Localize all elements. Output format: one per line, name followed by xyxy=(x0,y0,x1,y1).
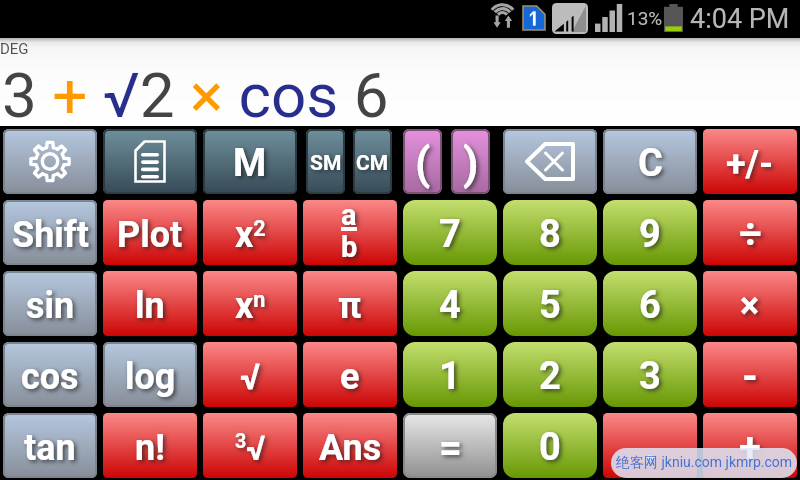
staticText: a xyxy=(341,200,357,232)
button[interactable]: +/- xyxy=(703,129,797,194)
staticText: Plot xyxy=(117,214,183,256)
staticText: ( xyxy=(415,138,431,190)
staticText: 2 xyxy=(539,354,561,399)
button[interactable]: 8 xyxy=(503,200,597,265)
button[interactable]: × xyxy=(703,271,797,336)
staticText: π xyxy=(338,285,362,327)
button[interactable]: M xyxy=(203,129,297,194)
button[interactable]: 6 xyxy=(603,271,697,336)
button[interactable]: - xyxy=(703,342,797,407)
button[interactable]: log xyxy=(103,342,197,407)
staticText: xn xyxy=(235,285,266,327)
staticText: ÷ xyxy=(739,211,762,258)
staticText: +/- xyxy=(726,143,774,185)
button[interactable]: ÷ xyxy=(703,200,797,265)
staticText: ) xyxy=(463,138,479,190)
button[interactable]: Shift xyxy=(3,200,97,265)
staticText: x2 xyxy=(235,214,266,256)
staticText: e xyxy=(340,356,360,398)
staticText: 13% xyxy=(627,7,663,29)
button[interactable]: ( xyxy=(403,129,442,194)
button[interactable]: 9 xyxy=(603,200,697,265)
staticText: n! xyxy=(135,427,165,469)
button[interactable]: √ xyxy=(203,342,297,407)
staticText: 7 xyxy=(439,212,461,257)
staticText: log xyxy=(125,356,176,398)
button[interactable]: Plot xyxy=(103,200,197,265)
button[interactable]: x2 xyxy=(203,200,297,265)
staticText: 4:04 PM xyxy=(690,3,790,35)
button[interactable]: 3√ xyxy=(203,413,297,478)
staticText: 3 + √2 × cos 6 xyxy=(2,59,389,132)
staticText: 8 xyxy=(539,212,561,257)
staticText: Shift xyxy=(12,214,89,256)
staticText: × xyxy=(740,285,760,327)
staticText: b xyxy=(341,230,358,264)
button[interactable]: + xyxy=(703,413,797,478)
button[interactable]: cos xyxy=(3,342,97,407)
button[interactable]: ) xyxy=(451,129,490,194)
staticText: cos xyxy=(21,356,79,398)
button[interactable]: 3 xyxy=(603,342,697,407)
staticText: 9 xyxy=(639,212,661,257)
button[interactable]: Backspace xyxy=(503,129,597,194)
button[interactable]: e xyxy=(303,342,397,407)
button[interactable]: 4 xyxy=(403,271,497,336)
staticText: CM xyxy=(356,151,389,176)
button[interactable]: SM xyxy=(306,129,345,194)
button[interactable]: CM xyxy=(353,129,392,194)
staticText: . xyxy=(644,424,656,471)
button[interactable]: . xyxy=(603,413,697,478)
staticText: = xyxy=(439,424,462,471)
button[interactable]: 5 xyxy=(503,271,597,336)
staticText: + xyxy=(739,424,761,471)
staticText: ln xyxy=(135,285,165,327)
staticText: C xyxy=(638,141,663,186)
staticText: 3 xyxy=(639,354,661,399)
staticText: 1 xyxy=(439,354,461,399)
button[interactable]: Ans xyxy=(303,413,397,478)
staticText: tan xyxy=(24,427,76,469)
staticText: sin xyxy=(26,285,75,327)
staticText: DEG xyxy=(0,40,29,58)
staticText: 3√ xyxy=(235,428,266,468)
staticText: √ xyxy=(240,356,261,398)
button[interactable]: a xyxy=(303,200,397,265)
staticText: - xyxy=(742,353,758,400)
button[interactable]: xn xyxy=(203,271,297,336)
button[interactable]: History xyxy=(103,129,197,194)
button[interactable]: 0 xyxy=(503,413,597,478)
staticText: 5 xyxy=(539,283,561,328)
button[interactable]: C xyxy=(603,129,697,194)
button[interactable]: ln xyxy=(103,271,197,336)
button[interactable]: 7 xyxy=(403,200,497,265)
button[interactable]: = xyxy=(403,413,497,478)
staticText: SM xyxy=(310,151,342,176)
staticText: 0 xyxy=(539,425,561,470)
button[interactable]: 1 xyxy=(403,342,497,407)
staticText: M xyxy=(233,141,267,186)
staticText: 6 xyxy=(639,283,661,328)
staticText: Ans xyxy=(319,427,382,469)
button[interactable]: 2 xyxy=(503,342,597,407)
button[interactable]: π xyxy=(303,271,397,336)
button[interactable]: Settings xyxy=(3,129,97,194)
button[interactable]: sin xyxy=(3,271,97,336)
staticText: 4 xyxy=(439,283,461,328)
button[interactable]: tan xyxy=(3,413,97,478)
button[interactable]: n! xyxy=(103,413,197,478)
staticText: 绝客网 jkniu.com jkmrp.com xyxy=(616,454,793,472)
